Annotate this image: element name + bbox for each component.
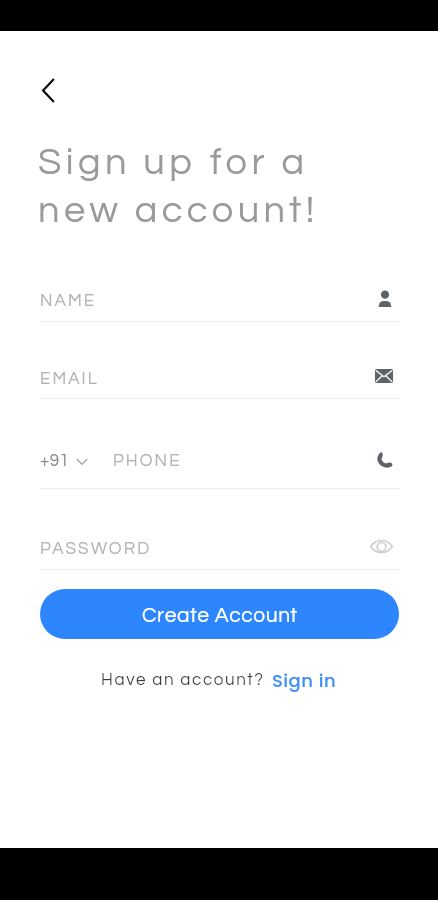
button[interactable]: NAME <box>40 286 400 322</box>
staticText: PHONE <box>113 452 182 470</box>
staticText: Have an account? <box>101 671 265 689</box>
button[interactable]: PASSWORD <box>40 534 400 570</box>
button[interactable]: Name <box>378 290 392 307</box>
button[interactable]: Email <box>375 369 393 383</box>
staticText: PASSWORD <box>40 540 152 558</box>
button[interactable]: EMAIL <box>40 364 400 399</box>
button[interactable]: Back <box>26 68 70 112</box>
staticText: Create Account <box>142 605 298 627</box>
staticText: Sign up for a new account! <box>38 143 319 230</box>
button[interactable]: Sign in <box>272 668 337 693</box>
button[interactable]: Show password <box>370 538 393 555</box>
staticText: +91 <box>40 452 70 470</box>
staticText: NAME <box>40 292 97 310</box>
staticText: EMAIL <box>40 370 99 388</box>
button[interactable]: Phone <box>376 452 393 468</box>
button[interactable]: +91 <box>40 446 400 489</box>
button[interactable]: Create Account <box>40 589 399 639</box>
